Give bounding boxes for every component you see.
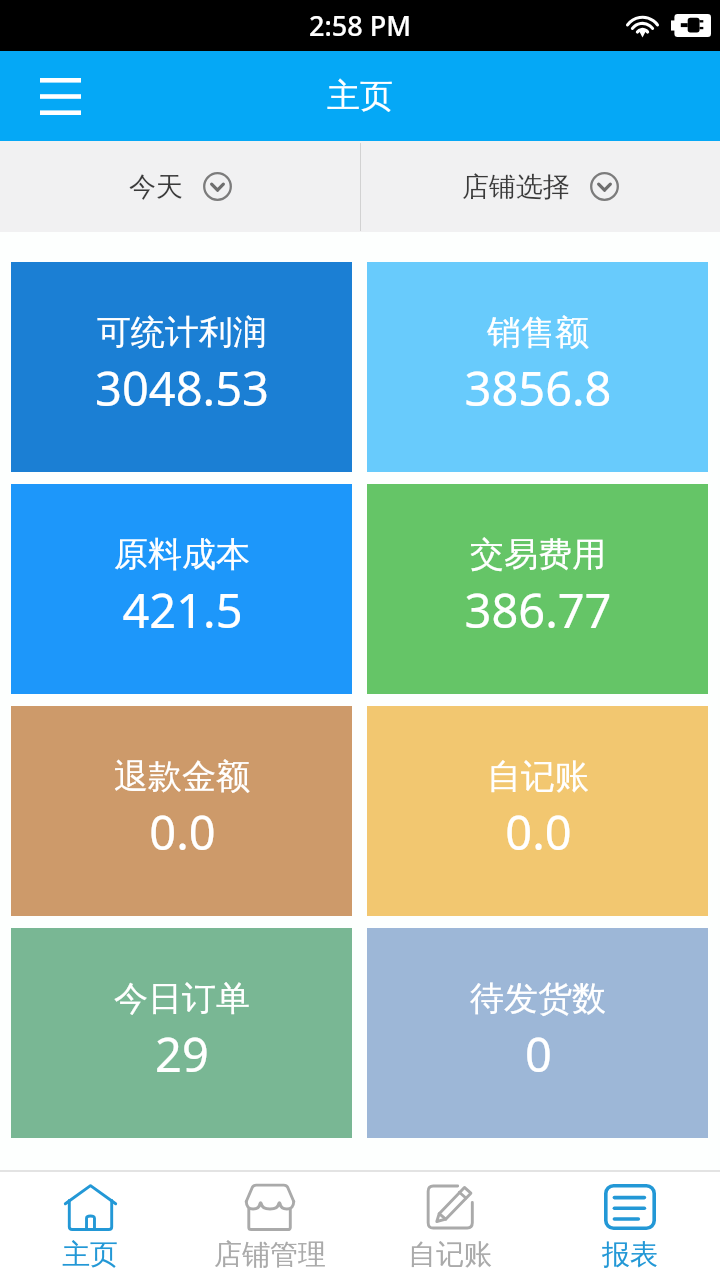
button[interactable]: 销售额 bbox=[367, 262, 708, 472]
staticText: 主页 bbox=[62, 1237, 118, 1272]
staticText: 0.0 bbox=[505, 800, 572, 864]
button[interactable]: 交易费用 bbox=[367, 484, 708, 694]
staticText: 自记账 bbox=[408, 1237, 492, 1272]
staticText: 2:58 PM bbox=[309, 7, 411, 44]
button[interactable]: 今天 bbox=[0, 141, 360, 232]
button[interactable]: 自记账 bbox=[367, 706, 708, 916]
button[interactable]: 可统计利润 bbox=[11, 262, 352, 472]
staticText: 退款金额 bbox=[114, 755, 250, 798]
staticText: 0.0 bbox=[149, 800, 216, 864]
button[interactable]: 原料成本 bbox=[11, 484, 352, 694]
staticText: 421.5 bbox=[122, 578, 243, 642]
button[interactable]: 主页 bbox=[0, 1172, 180, 1280]
staticText: 待发货数 bbox=[470, 977, 606, 1020]
staticText: 原料成本 bbox=[114, 533, 250, 576]
staticText: 报表 bbox=[602, 1237, 658, 1272]
staticText: 可统计利润 bbox=[97, 311, 267, 354]
staticText: 0 bbox=[525, 1022, 552, 1086]
button[interactable]: 退款金额 bbox=[11, 706, 352, 916]
staticText: 主页 bbox=[327, 75, 393, 117]
staticText: 自记账 bbox=[487, 755, 589, 798]
button[interactable]: 报表 bbox=[540, 1172, 720, 1280]
staticText: 29 bbox=[155, 1022, 209, 1086]
staticText: 店铺选择 bbox=[462, 170, 570, 204]
staticText: 3856.8 bbox=[464, 356, 612, 420]
staticText: 386.77 bbox=[464, 578, 612, 642]
button[interactable]: 店铺管理 bbox=[180, 1172, 360, 1280]
staticText: 今日订单 bbox=[114, 977, 250, 1020]
button[interactable]: 今日订单 bbox=[11, 928, 352, 1138]
button[interactable]: 待发货数 bbox=[367, 928, 708, 1138]
staticText: 销售额 bbox=[487, 311, 589, 354]
staticText: 3048.53 bbox=[95, 356, 269, 420]
staticText: 店铺管理 bbox=[214, 1237, 326, 1272]
button[interactable]: 自记账 bbox=[360, 1172, 540, 1280]
button[interactable]: 店铺选择 bbox=[360, 141, 720, 232]
button[interactable]: Menu bbox=[27, 63, 93, 129]
staticText: 今天 bbox=[129, 170, 183, 204]
staticText: 交易费用 bbox=[470, 533, 606, 576]
